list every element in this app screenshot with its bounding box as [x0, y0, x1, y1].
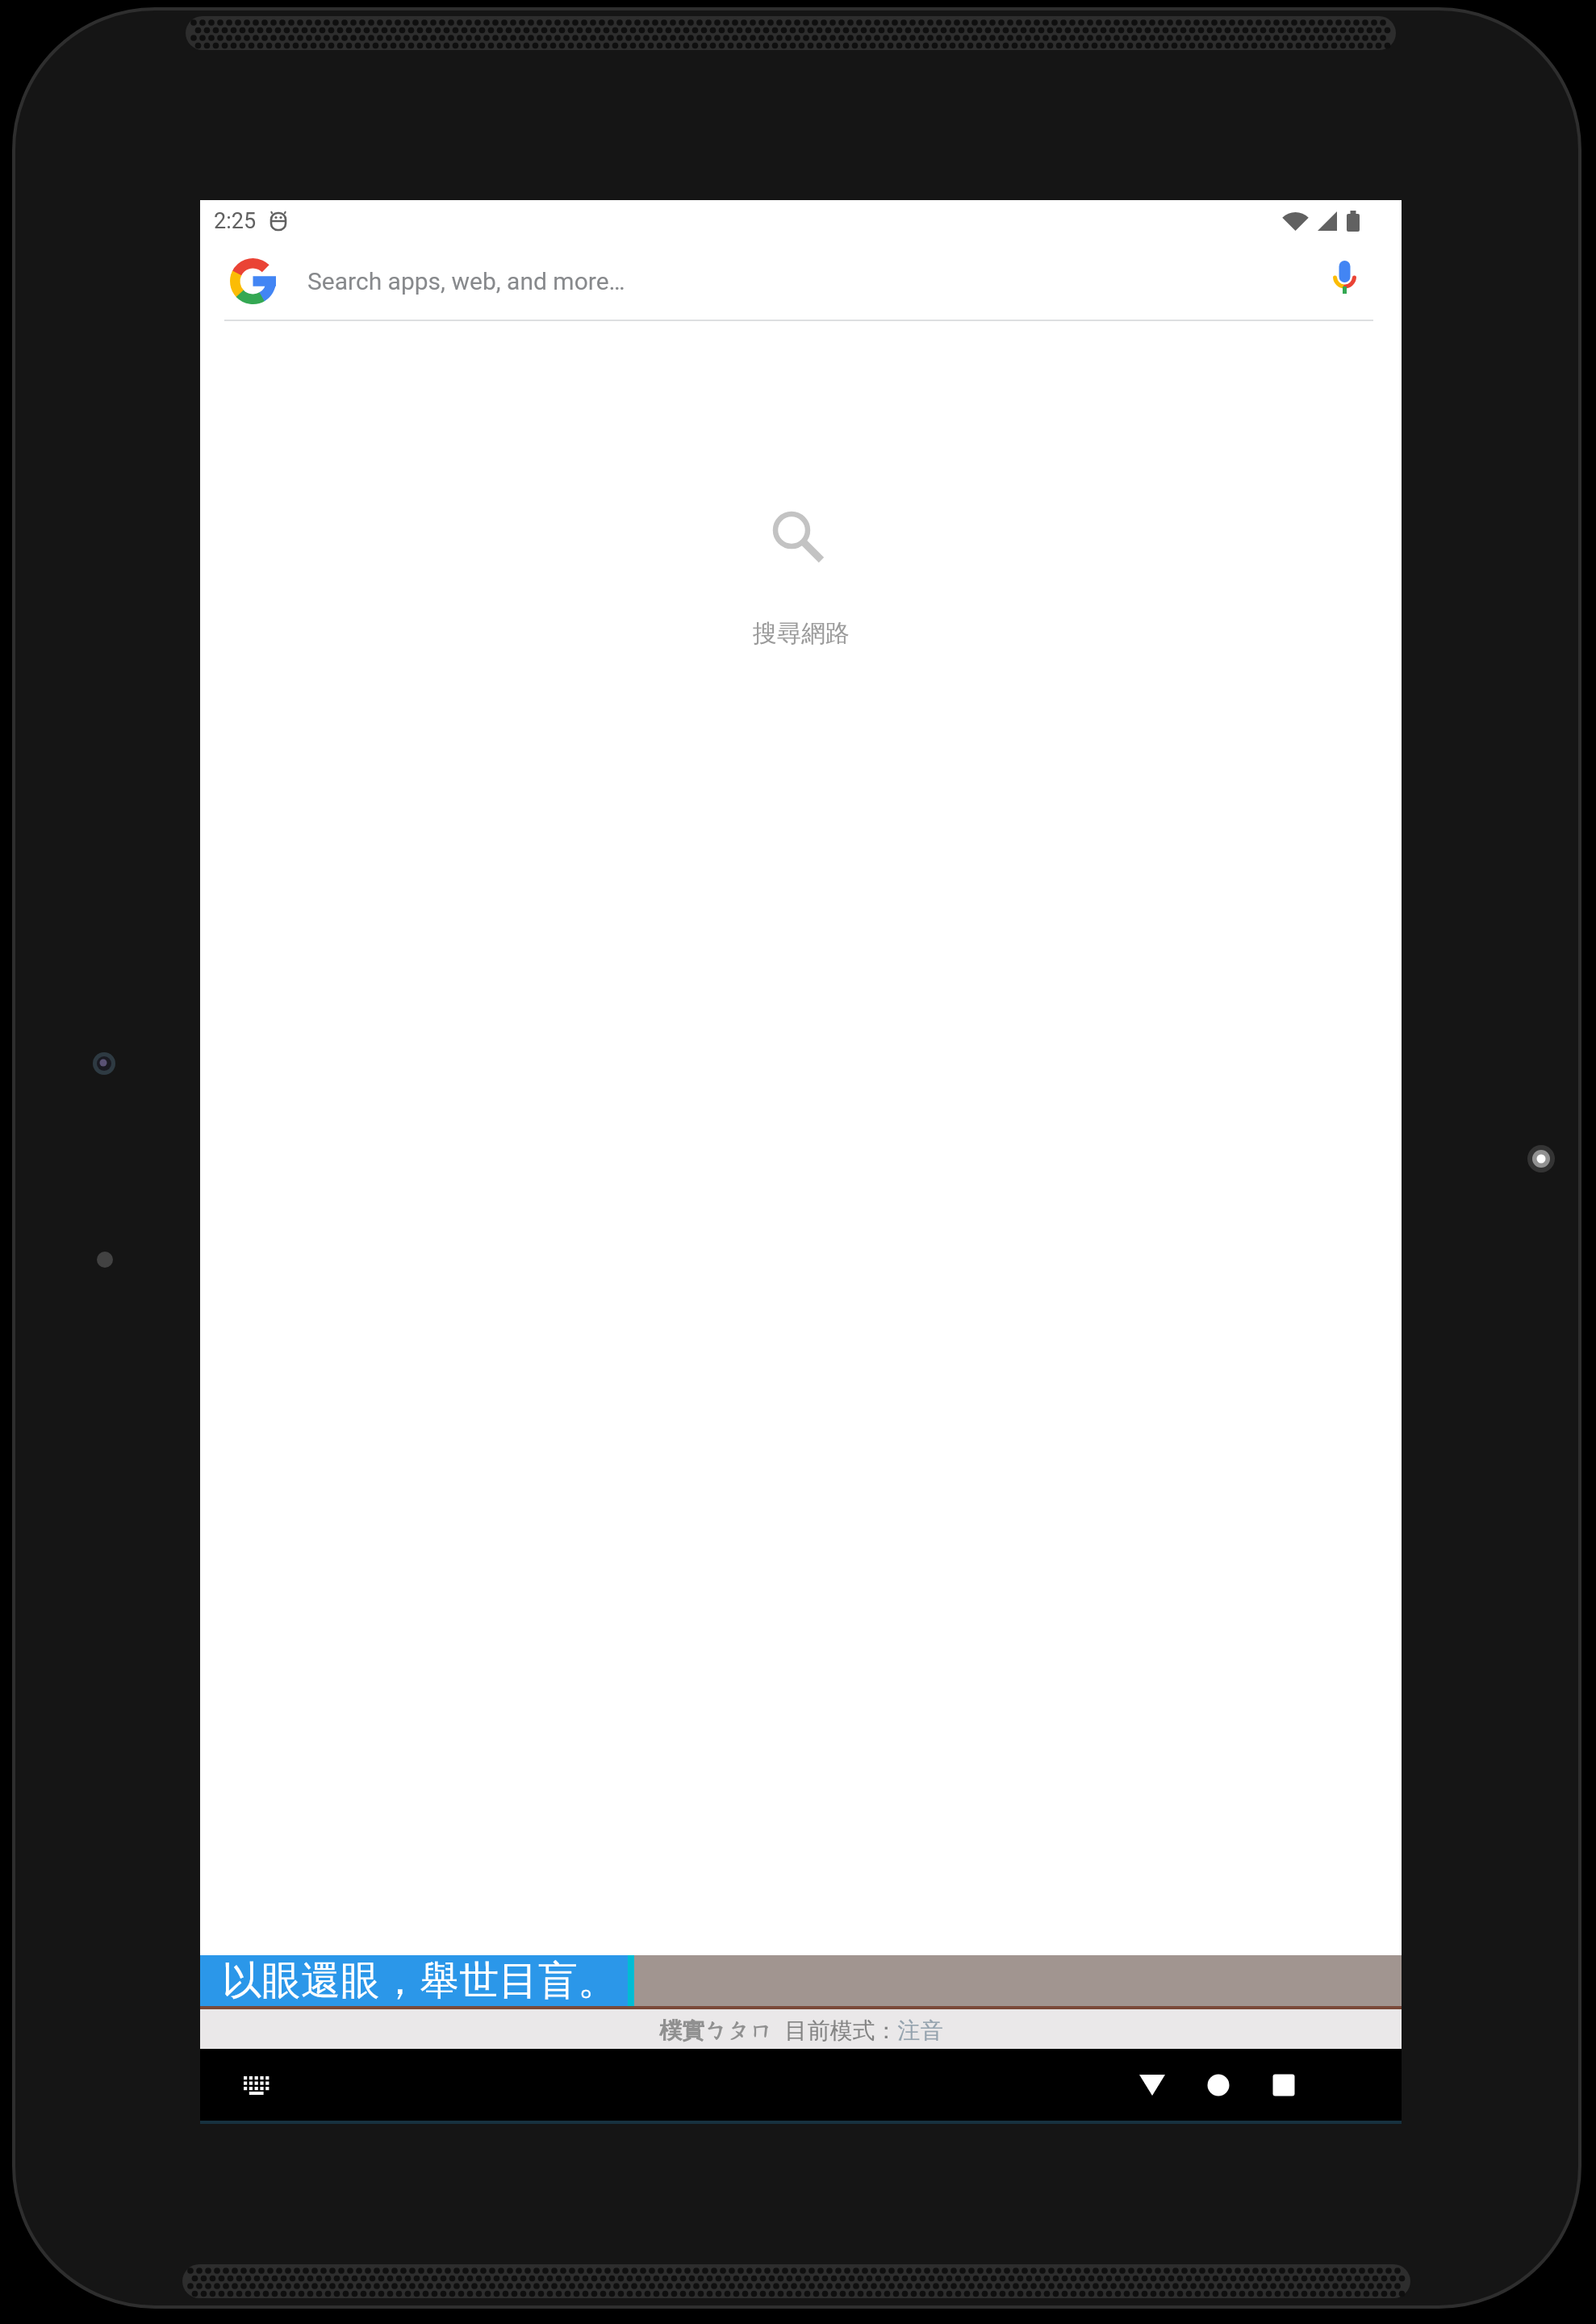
button[interactable] — [1190, 2057, 1247, 2113]
button[interactable]: 以眼還眼，舉世目盲。 — [200, 1955, 628, 2006]
staticText: 以眼還眼，舉世目盲。 — [222, 1956, 617, 2006]
staticText: 樸實ㄅㄆㄇ 目前模式：注音 — [659, 2014, 943, 2045]
button[interactable] — [1255, 2057, 1312, 2113]
button[interactable]: 樸實ㄅㄆㄇ 目前模式：注音 — [200, 2009, 1402, 2049]
button[interactable] — [1334, 261, 1356, 301]
staticText: 搜尋網路 — [753, 618, 850, 649]
staticText: Search apps, web, and more… — [307, 267, 625, 295]
button[interactable] — [232, 2063, 281, 2108]
staticText: 2:25 — [214, 208, 257, 234]
button[interactable]: Search apps, web, and more… — [200, 242, 1402, 320]
button[interactable] — [1123, 2057, 1181, 2113]
